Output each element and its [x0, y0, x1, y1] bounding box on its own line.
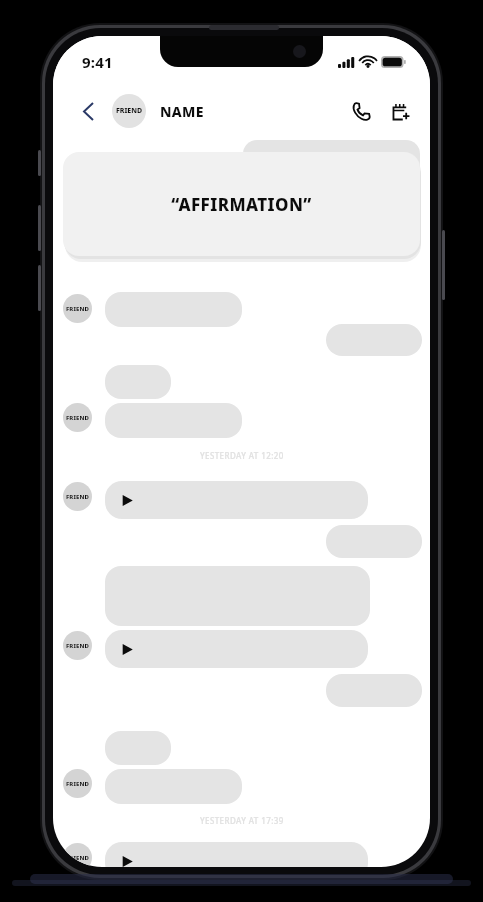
staticText: YESTERDAY AT 12:20 [200, 450, 284, 461]
button[interactable] [105, 292, 242, 327]
staticText: FRIEND [66, 854, 89, 862]
button[interactable] [105, 731, 171, 765]
button[interactable]: Schedule event [383, 94, 417, 128]
staticText: NAME [160, 102, 204, 121]
staticText: FRIEND [116, 106, 143, 116]
staticText: FRIEND [66, 493, 89, 501]
button[interactable] [243, 140, 420, 185]
button[interactable]: FRIEND [63, 294, 92, 323]
staticText: 9:41 [82, 52, 113, 72]
button[interactable] [326, 324, 422, 356]
button[interactable]: FRIEND [63, 482, 92, 511]
button[interactable] [326, 525, 422, 558]
staticText: FRIEND [66, 305, 89, 313]
staticText: “AFFIRMATION” [171, 193, 312, 216]
button[interactable] [105, 365, 171, 399]
button[interactable]: FRIEND [63, 631, 92, 660]
button[interactable]: Play voice message [105, 630, 368, 668]
button[interactable] [105, 769, 242, 804]
button[interactable]: Call [344, 94, 378, 128]
button[interactable] [326, 674, 422, 707]
button[interactable]: FRIEND [63, 769, 92, 798]
staticText: YESTERDAY AT 17:39 [200, 815, 284, 826]
button[interactable]: NAME [160, 94, 204, 128]
button[interactable]: Back [71, 94, 105, 128]
button[interactable]: Play voice message [105, 842, 368, 867]
button[interactable]: FRIEND [112, 94, 146, 128]
button[interactable] [105, 403, 242, 438]
staticText: FRIEND [66, 642, 89, 650]
button[interactable]: “AFFIRMATION” [63, 152, 420, 256]
button[interactable]: FRIEND [63, 843, 92, 867]
staticText: FRIEND [66, 414, 89, 422]
staticText: FRIEND [66, 780, 89, 788]
button[interactable]: FRIEND [63, 403, 92, 432]
button[interactable] [105, 566, 370, 626]
button[interactable]: Play voice message [105, 481, 368, 519]
